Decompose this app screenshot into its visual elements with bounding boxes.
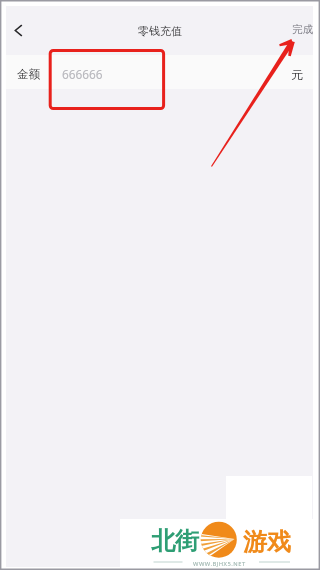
staticText: 零钱充值 <box>138 24 182 38</box>
staticText: 元 <box>291 67 303 82</box>
staticText: 北街 <box>151 526 199 556</box>
staticText: 完成 <box>292 23 313 36</box>
staticText: 金额 <box>17 67 40 81</box>
button[interactable]: Back <box>3 16 31 44</box>
staticText: 游戏 <box>243 527 291 557</box>
button[interactable]: 完成 <box>286 17 319 42</box>
staticText: WWW.BJHX5.NET <box>193 560 246 568</box>
staticText: 666666 <box>62 66 103 82</box>
